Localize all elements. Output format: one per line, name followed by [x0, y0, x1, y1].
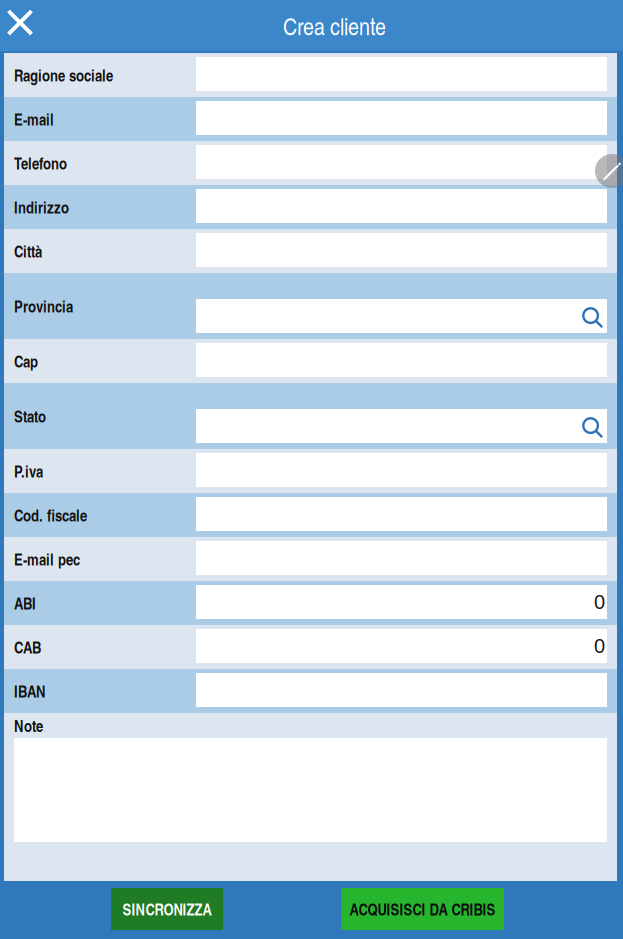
- button[interactable]: CAB: [4, 625, 617, 669]
- staticText: 0: [594, 591, 605, 613]
- button[interactable]: Indirizzo: [4, 185, 617, 229]
- button[interactable]: ABI: [4, 581, 617, 625]
- staticText: P.iva: [14, 460, 43, 482]
- button[interactable]: Cap: [4, 339, 617, 383]
- staticText: Cap: [14, 350, 38, 372]
- button[interactable]: Edit: [595, 154, 623, 188]
- staticText: Note: [14, 714, 43, 737]
- button[interactable]: Close: [0, 0, 46, 51]
- staticText: E-mail pec: [14, 548, 80, 570]
- staticText: Telefono: [14, 152, 67, 174]
- button[interactable]: Stato: [4, 383, 617, 449]
- button[interactable]: SINCRONIZZA: [111, 888, 223, 930]
- staticText: Cod. fiscale: [14, 504, 87, 526]
- staticText: Provincia: [14, 295, 73, 317]
- button[interactable]: IBAN: [4, 669, 617, 713]
- staticText: E-mail: [14, 108, 54, 130]
- button[interactable]: P.iva: [4, 449, 617, 493]
- staticText: ACQUISISCI DA CRIBIS: [349, 898, 495, 920]
- button[interactable]: Cod. fiscale: [4, 493, 617, 537]
- staticText: Città: [14, 240, 42, 262]
- staticText: SINCRONIZZA: [122, 898, 211, 920]
- staticText: Crea cliente: [283, 9, 386, 42]
- button[interactable]: Telefono: [4, 141, 617, 185]
- staticText: Ragione sociale: [14, 64, 113, 86]
- button[interactable]: Provincia: [4, 273, 617, 339]
- button[interactable]: E-mail: [4, 97, 617, 141]
- button[interactable]: Città: [4, 229, 617, 273]
- staticText: ABI: [14, 592, 36, 614]
- staticText: Stato: [14, 405, 46, 427]
- staticText: 0: [594, 635, 605, 657]
- button[interactable]: E-mail pec: [4, 537, 617, 581]
- staticText: CAB: [14, 636, 41, 658]
- staticText: IBAN: [14, 680, 45, 702]
- button[interactable]: Ragione sociale: [4, 53, 617, 97]
- button[interactable]: ACQUISISCI DA CRIBIS: [341, 888, 504, 930]
- staticText: Indirizzo: [14, 196, 69, 218]
